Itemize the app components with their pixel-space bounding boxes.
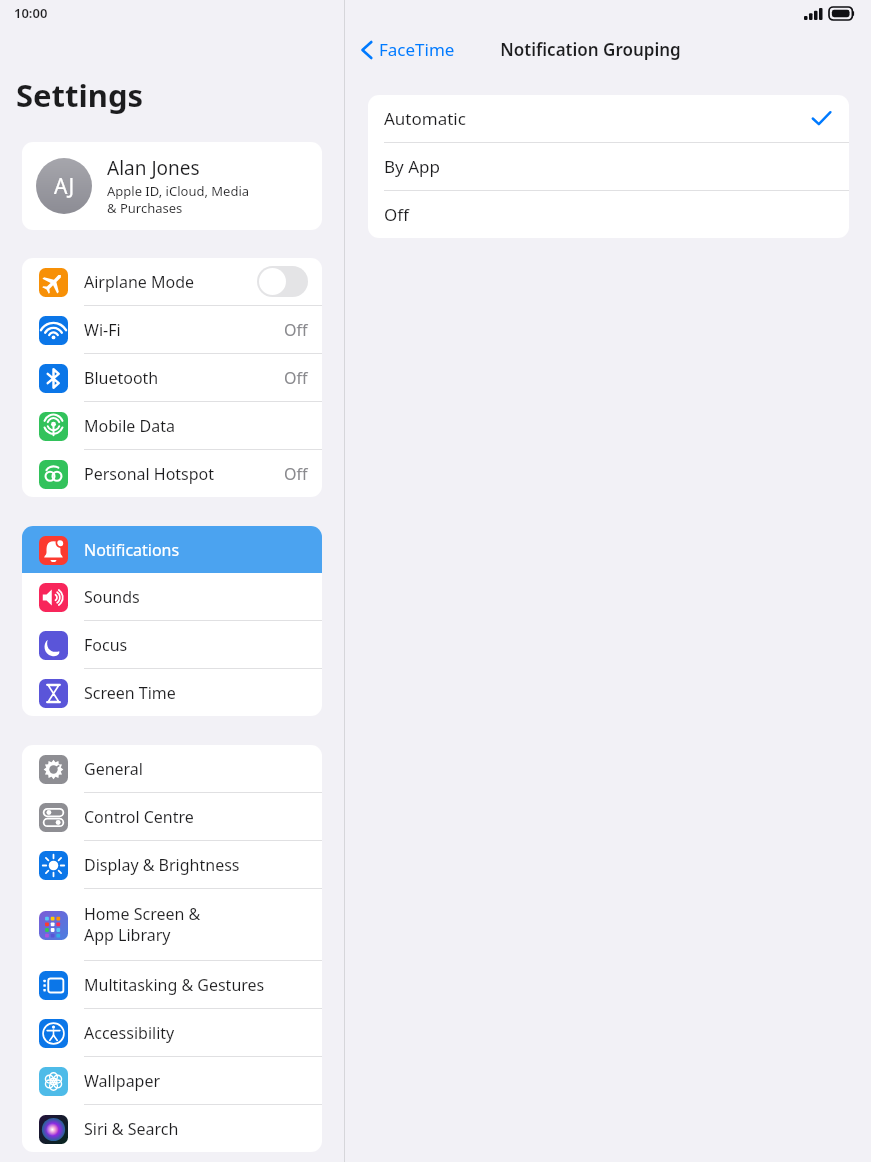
button[interactable]: General <box>22 745 322 792</box>
staticText: Sounds <box>84 586 308 608</box>
staticText: Mobile Data <box>84 415 308 437</box>
staticText: Notifications <box>84 539 308 561</box>
button[interactable]: Personal Hotspot <box>22 450 322 497</box>
staticText: Airplane Mode <box>84 271 257 293</box>
button[interactable]: Display & Brightness <box>22 841 322 888</box>
staticText: General <box>84 758 308 780</box>
staticText: Settings <box>16 74 144 116</box>
staticText: FaceTime <box>379 38 455 61</box>
staticText: Notification Grouping <box>500 38 681 61</box>
button[interactable]: Siri & Search <box>22 1105 322 1152</box>
button[interactable]: Wi-Fi <box>22 306 322 353</box>
button[interactable]: Airplane Mode toggle <box>257 266 308 297</box>
button[interactable]: Multitasking & Gestures <box>22 961 322 1008</box>
button[interactable]: Notifications <box>22 526 322 573</box>
button[interactable]: Airplane Mode <box>22 258 322 305</box>
staticText: Screen Time <box>84 682 308 704</box>
staticText: Control Centre <box>84 806 308 828</box>
button[interactable]: Home Screen & App Library <box>22 889 322 960</box>
staticText: Multitasking & Gestures <box>84 974 308 996</box>
button[interactable]: AJ <box>22 142 322 230</box>
button[interactable]: Off <box>368 191 849 238</box>
button[interactable]: FaceTime <box>357 34 459 65</box>
staticText: Wallpaper <box>84 1070 308 1092</box>
staticText: Personal Hotspot <box>84 463 284 485</box>
button[interactable]: Sounds <box>22 573 322 620</box>
button[interactable]: Focus <box>22 621 322 668</box>
button[interactable]: Mobile Data <box>22 402 322 449</box>
staticText: Focus <box>84 634 308 656</box>
staticText: 10:00 <box>14 4 48 22</box>
staticText: Off <box>284 367 308 389</box>
staticText: AJ <box>54 172 75 201</box>
staticText: Off <box>284 463 308 485</box>
button[interactable]: Automatic <box>368 95 849 142</box>
staticText: Home Screen & App Library <box>84 903 308 946</box>
staticText: By App <box>384 155 831 178</box>
staticText: Bluetooth <box>84 367 284 389</box>
button[interactable]: Bluetooth <box>22 354 322 401</box>
button[interactable]: Wallpaper <box>22 1057 322 1104</box>
staticText: Automatic <box>384 107 812 130</box>
staticText: Off <box>384 203 831 226</box>
staticText: Apple ID, iCloud, Media & Purchases <box>107 182 250 217</box>
staticText: Wi-Fi <box>84 319 284 341</box>
button[interactable]: Accessibility <box>22 1009 322 1056</box>
staticText: Off <box>284 319 308 341</box>
staticText: Accessibility <box>84 1022 308 1044</box>
button[interactable]: Control Centre <box>22 793 322 840</box>
button[interactable]: Screen Time <box>22 669 322 716</box>
staticText: Alan Jones <box>107 155 200 181</box>
staticText: Siri & Search <box>84 1118 308 1140</box>
staticText: Display & Brightness <box>84 854 308 876</box>
button[interactable]: By App <box>368 143 849 190</box>
